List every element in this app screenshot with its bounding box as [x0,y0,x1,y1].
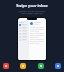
button[interactable] [19,24,28,26]
button[interactable]: Calendar [20,63,26,69]
button[interactable] [19,27,28,29]
staticText: Quickly triage mail with one simple gest… [3,9,61,15]
staticText: Swipe your inbox [0,3,64,8]
button[interactable] [19,39,28,41]
button[interactable]: Mail [55,63,61,69]
button[interactable] [19,30,28,32]
button[interactable] [19,36,28,38]
button[interactable]: Notes [38,63,44,69]
button[interactable]: Gmail [3,63,9,69]
button[interactable] [19,33,28,35]
